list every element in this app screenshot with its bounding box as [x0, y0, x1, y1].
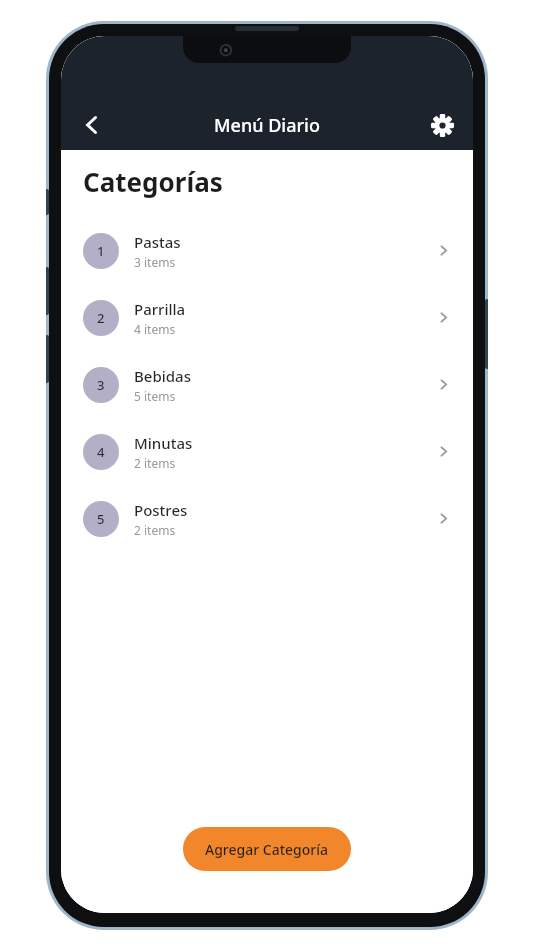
- staticText: 1: [97, 242, 105, 260]
- staticText: Agregar Categoría: [205, 840, 329, 859]
- staticText: Categorías: [83, 164, 223, 199]
- staticText: 5 items: [134, 388, 176, 404]
- staticText: 3 items: [134, 254, 176, 270]
- button[interactable]: 3: [61, 351, 473, 418]
- button[interactable]: 2: [61, 284, 473, 351]
- staticText: Pastas: [134, 232, 181, 252]
- staticText: 4: [97, 443, 105, 461]
- staticText: Parrilla: [134, 299, 186, 319]
- staticText: 4 items: [134, 321, 176, 337]
- staticText: Minutas: [134, 433, 193, 453]
- staticText: 2: [97, 309, 105, 327]
- staticText: 2 items: [134, 522, 176, 538]
- staticText: 5: [97, 510, 105, 528]
- button[interactable]: Settings: [421, 104, 463, 146]
- staticText: Postres: [134, 500, 188, 520]
- staticText: Bebidas: [134, 366, 191, 386]
- staticText: Menú Diario: [214, 113, 320, 138]
- staticText: 2 items: [134, 455, 176, 471]
- staticText: 3: [97, 376, 105, 394]
- button[interactable]: Back: [71, 104, 113, 146]
- button[interactable]: 4: [61, 418, 473, 485]
- button[interactable]: 5: [61, 485, 473, 552]
- button[interactable]: 1: [61, 217, 473, 284]
- button[interactable]: Agregar Categoría: [183, 827, 351, 871]
